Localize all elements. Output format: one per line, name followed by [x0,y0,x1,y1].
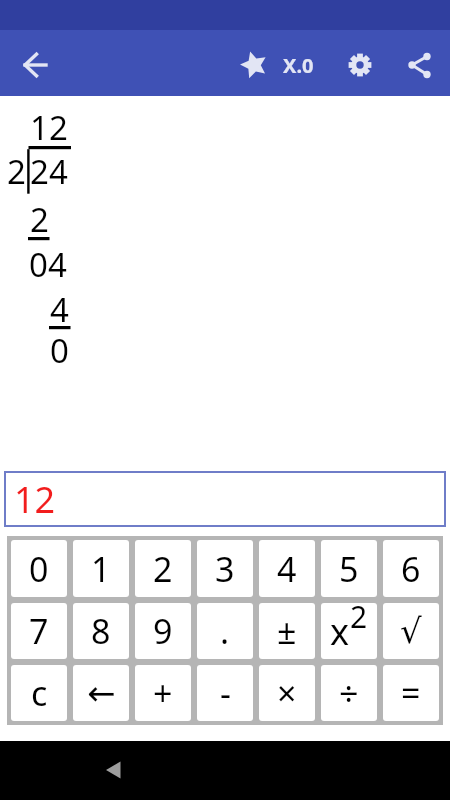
staticText: 4 [50,287,69,332]
staticText: ± [277,608,297,654]
staticText: 24 [30,149,68,194]
button[interactable]: ÷ [321,665,377,721]
staticText: 0 [50,328,69,373]
staticText: 2 [30,197,49,242]
button[interactable]: 7 [11,603,67,659]
button[interactable] [397,43,442,88]
button[interactable]: x [321,603,377,659]
staticText: - [220,670,231,716]
button[interactable]: 5 [321,540,377,597]
button[interactable]: - [197,665,253,721]
staticText: 4 [277,546,297,592]
button[interactable]: 8 [73,603,129,659]
staticText: 7 [29,608,49,654]
button[interactable]: 6 [383,540,439,597]
button[interactable] [14,43,58,87]
button[interactable]: × [259,665,315,721]
staticText: = [401,670,421,716]
staticText: × [277,670,297,716]
button[interactable]: 12 [4,471,446,527]
button[interactable] [232,43,276,87]
staticText: 2 [350,596,368,637]
button[interactable]: 3 [197,540,253,597]
staticText: 12 [14,475,56,524]
button[interactable]: . [197,603,253,659]
staticText: 2 [153,546,173,592]
staticText: 3 [215,546,235,592]
button[interactable]: 2 [135,540,191,597]
button[interactable] [85,742,141,798]
staticText: 12 [30,105,68,150]
button[interactable]: + [135,665,191,721]
staticText: 8 [91,608,111,654]
staticText: c [31,670,48,716]
button[interactable]: 1 [73,540,129,597]
button[interactable]: 0 [11,540,67,597]
staticText: + [153,670,173,716]
button[interactable]: ± [259,603,315,659]
staticText: 0 [29,546,49,592]
staticText: 2 [7,149,26,194]
button[interactable]: = [383,665,439,721]
staticText: . [220,608,230,654]
button[interactable]: √ [383,603,439,659]
button[interactable]: 4 [259,540,315,597]
staticText: 04 [29,242,67,287]
staticText: 9 [153,608,173,654]
button[interactable]: ← [73,665,129,721]
staticText: X.0 [283,52,314,79]
button[interactable]: c [11,665,67,721]
staticText: ← [87,673,116,713]
staticText: x [330,607,350,656]
staticText: √ [400,611,422,651]
staticText: 1 [91,546,111,592]
staticText: ÷ [339,670,359,716]
staticText: 6 [401,546,421,592]
button[interactable]: X.0 [276,43,320,87]
button[interactable]: 9 [135,603,191,659]
button[interactable] [338,43,382,87]
staticText: 5 [339,546,359,592]
